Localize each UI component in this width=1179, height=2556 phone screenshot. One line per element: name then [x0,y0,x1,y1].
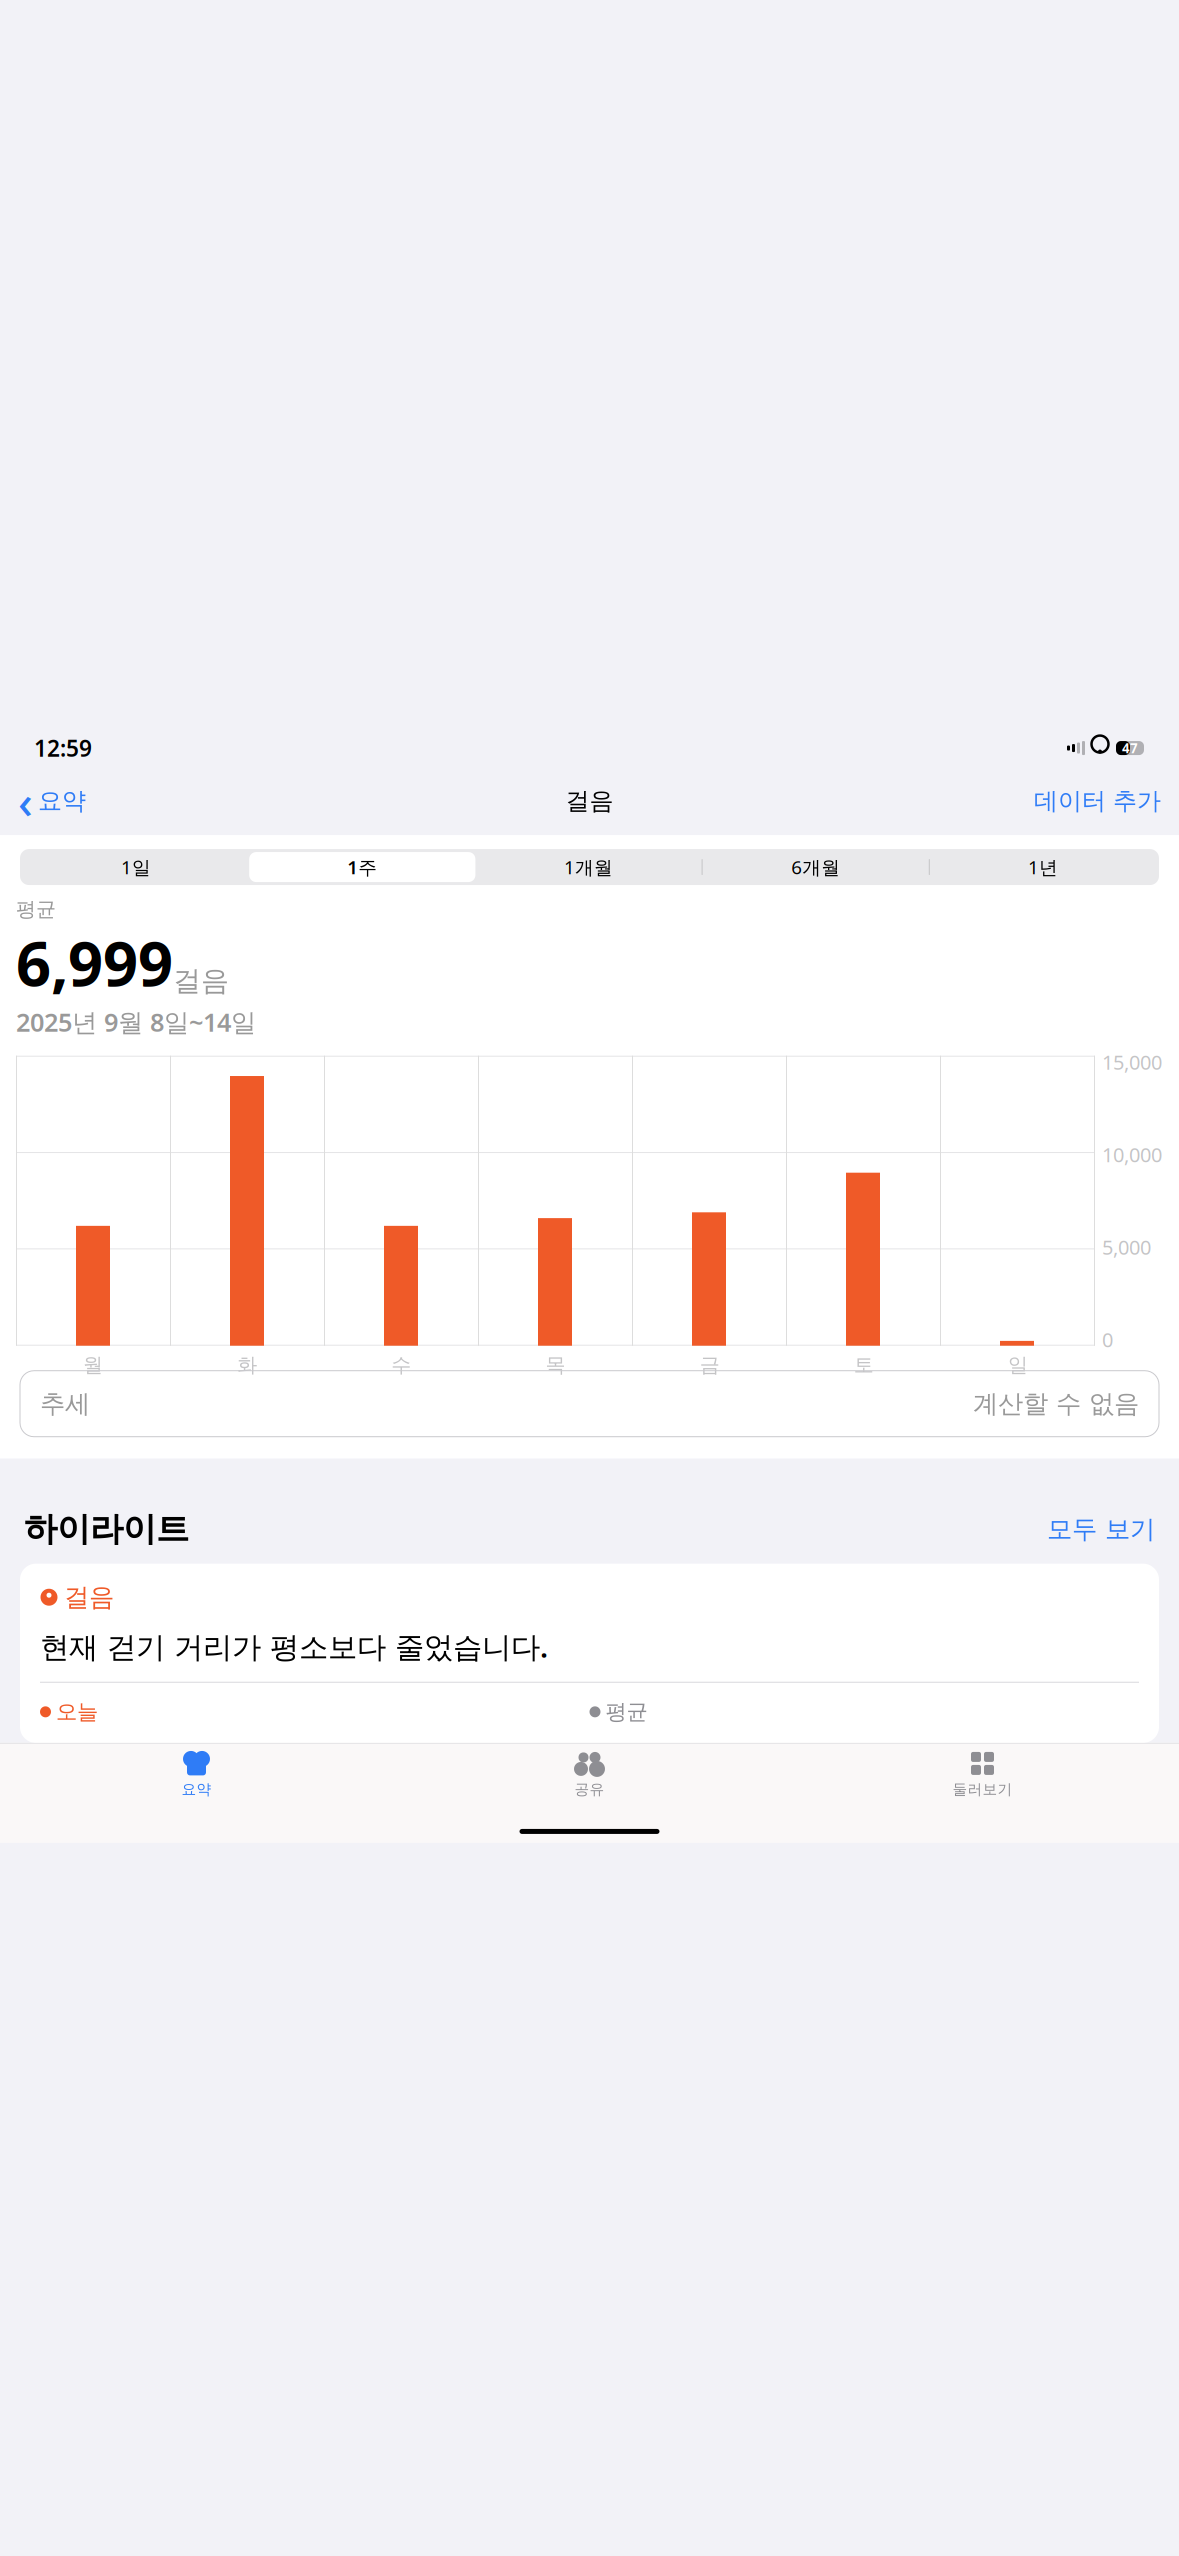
button[interactable]: 요약 [0,1742,393,1798]
button[interactable]: 6개월 [703,852,929,882]
staticText: 계산할 수 없음 [973,1388,1139,1419]
button[interactable]: ‹ [8,765,96,837]
staticText: 0 [1102,1326,1113,1353]
staticText: 둘러보기 [952,1780,1012,1798]
staticText: 오늘 [56,1699,98,1725]
button[interactable]: 1일 [23,852,249,882]
staticText: 하이라이트 [24,1509,189,1550]
staticText: 걸음 [565,786,613,816]
staticText: 요약 [181,1780,211,1798]
staticText: 토 [854,1353,874,1377]
button[interactable]: 데이터 추가 [1024,780,1171,822]
staticText: 1일 [121,855,151,879]
staticText: 1주 [347,855,377,879]
staticText: 공유 [574,1780,604,1798]
staticText: 평균 [16,897,56,922]
staticText: 1년 [1028,855,1058,879]
button[interactable]: 모두 보기 [1047,1514,1155,1545]
staticText: 일 [1008,1353,1028,1377]
staticText: 데이터 추가 [1034,786,1161,816]
button[interactable]: 1개월 [475,852,702,882]
staticText: 47 [1122,739,1138,757]
staticText: 6개월 [791,855,840,879]
button[interactable]: 둘러보기 [786,1742,1179,1798]
button[interactable]: 걸음 [20,1564,1159,1743]
button[interactable]: 1년 [930,852,1156,882]
staticText: 월 [83,1353,103,1377]
staticText: 요약 [38,786,86,816]
staticText: 모두 보기 [1047,1514,1155,1545]
button[interactable]: 1주 [249,852,475,882]
staticText: 추세 [40,1388,90,1419]
staticText: 걸음 [64,1582,114,1613]
staticText: 금 [700,1353,720,1377]
staticText: 1개월 [564,855,613,879]
staticText: 평균 [605,1699,647,1725]
staticText: 목 [545,1353,565,1377]
staticText: 현재 걷기 거리가 평소보다 줄었습니다. [40,1627,548,1666]
staticText: 5,000 [1102,1234,1151,1260]
staticText: ‹ [18,771,33,831]
staticText: 수 [391,1353,411,1377]
staticText: 10,000 [1102,1141,1162,1168]
staticText: 2025년 9월 8일~14일 [16,1005,256,1039]
staticText: 6,999 [16,922,173,1003]
button[interactable]: 추세 [20,1371,1159,1437]
staticText: 화 [237,1353,257,1377]
staticText: 걸음 [173,964,229,998]
button[interactable]: 공유 [393,1742,786,1798]
staticText: 12:59 [34,733,92,763]
staticText: 15,000 [1102,1049,1162,1075]
